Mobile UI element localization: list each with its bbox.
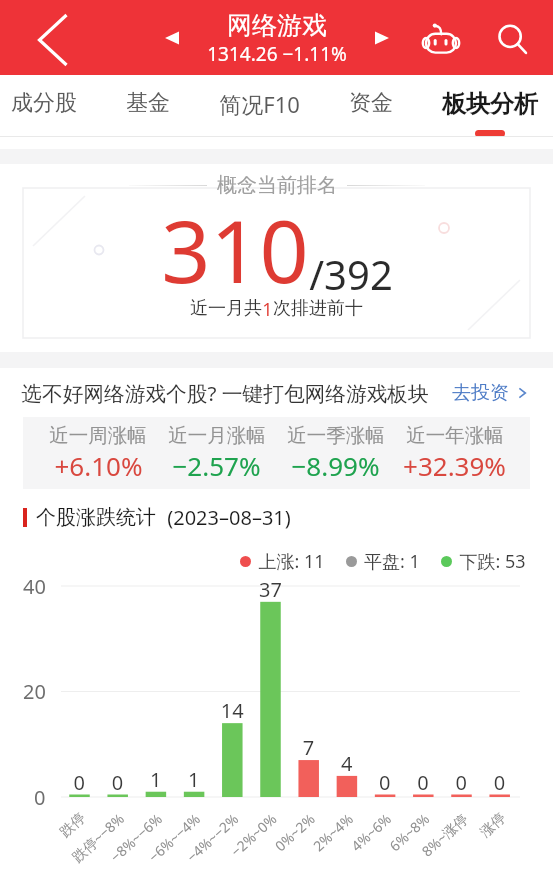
staticText: 个股涨跌统计 xyxy=(36,505,156,530)
button[interactable]: 板块分析 xyxy=(442,75,538,137)
staticText: 选不好网络游戏个股? 一键打包网络游戏板块 xyxy=(21,379,429,407)
staticText: −2.57% xyxy=(172,448,261,483)
button[interactable]: Search xyxy=(489,16,537,64)
button[interactable]: Back xyxy=(27,14,79,66)
staticText: 次排进前十 xyxy=(273,297,363,320)
staticText: /392 xyxy=(309,247,393,301)
staticText: 网络游戏 xyxy=(227,10,327,41)
staticText: 去投资 xyxy=(452,381,509,405)
staticText: 近一月共 xyxy=(190,297,262,320)
staticText: 近一周涨幅 xyxy=(49,423,147,448)
staticText: 平盘: 1 xyxy=(364,549,420,574)
staticText: 上涨: 11 xyxy=(258,549,325,574)
staticText: 1 xyxy=(262,297,273,322)
button[interactable]: 资金 xyxy=(349,75,393,137)
button[interactable]: 近一季涨幅 xyxy=(276,423,395,483)
staticText: 近一季涨幅 xyxy=(287,423,385,448)
button[interactable]: Previous sector xyxy=(155,21,189,55)
staticText: (2023–08–31) xyxy=(167,504,291,531)
staticText: 板块分析 xyxy=(442,89,538,119)
button[interactable]: Next sector xyxy=(365,21,399,55)
staticText: 概念当前排名 xyxy=(217,173,337,198)
staticText: 310 xyxy=(161,191,309,308)
staticText: 资金 xyxy=(349,89,393,117)
staticText: 下跌: 53 xyxy=(459,549,526,574)
staticText: +32.39% xyxy=(403,448,506,483)
staticText: 简况F10 xyxy=(219,89,300,119)
staticText: 成分股 xyxy=(11,89,77,117)
staticText: +6.10% xyxy=(54,448,143,483)
staticText: 1314.26 −1.11% xyxy=(207,41,347,67)
button[interactable]: AI assistant xyxy=(418,17,464,63)
staticText: −8.99% xyxy=(291,448,380,483)
staticText: 近一月涨幅 xyxy=(168,423,266,448)
staticText: 近一年涨幅 xyxy=(406,423,504,448)
button[interactable]: 近一月涨幅 xyxy=(157,423,276,483)
button[interactable]: 简况F10 xyxy=(219,75,300,137)
button[interactable]: 近一年涨幅 xyxy=(395,423,514,483)
staticText: 基金 xyxy=(126,89,170,117)
button[interactable]: 基金 xyxy=(126,75,170,137)
button[interactable]: 近一周涨幅 xyxy=(39,423,157,483)
button[interactable]: 成分股 xyxy=(11,75,77,137)
button[interactable]: 选不好网络游戏个股? 一键打包网络游戏板块 xyxy=(0,368,553,417)
